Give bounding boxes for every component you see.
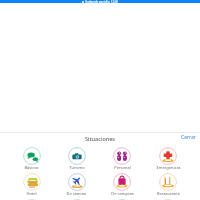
staticText: Emergencias (156, 165, 181, 170)
button[interactable]: De camino (54, 173, 99, 197)
button[interactable] (145, 199, 191, 200)
button[interactable]: De compras (99, 173, 145, 197)
button[interactable]: Turismo (54, 147, 99, 171)
button[interactable]: Básicos (9, 147, 54, 171)
button[interactable] (99, 199, 145, 200)
button[interactable] (54, 199, 99, 200)
button[interactable]: Restaurante (145, 173, 191, 197)
staticText: Cerrar (181, 134, 196, 141)
staticText: Situaciones (85, 135, 116, 142)
staticText: Hotel (26, 191, 37, 196)
staticText: Restaurante (157, 191, 180, 196)
button[interactable]: Personal (99, 147, 145, 171)
button[interactable]: Cerrar (181, 134, 196, 141)
button[interactable] (9, 199, 54, 200)
staticText: Básicos (24, 165, 39, 170)
staticText: De compras (111, 191, 134, 196)
button[interactable]: Hotel (9, 173, 54, 197)
staticText: Personal (114, 165, 131, 170)
staticText: Turismo (69, 165, 85, 170)
staticText: De camino (66, 191, 87, 196)
button[interactable]: Emergencias (145, 147, 191, 171)
staticText: Grabando pantalla 12:06 (85, 0, 119, 3)
